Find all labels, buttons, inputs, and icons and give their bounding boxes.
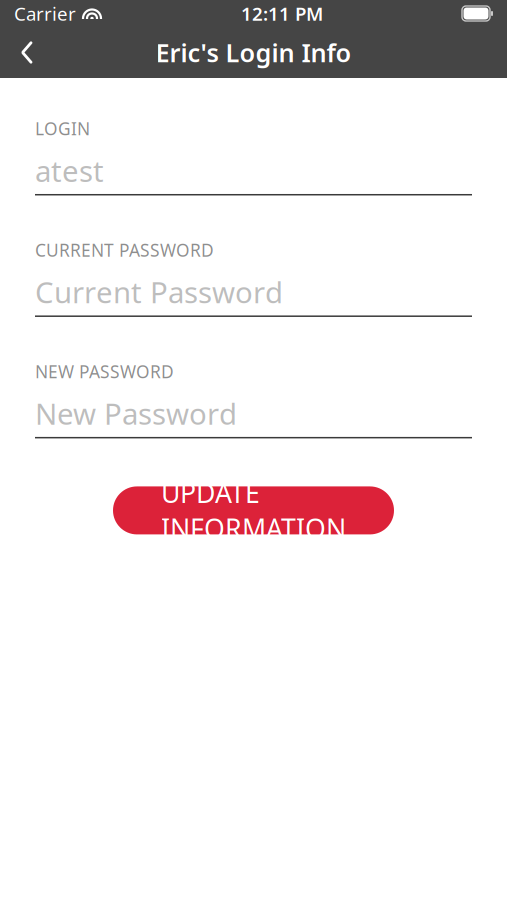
staticText: New Password: [35, 394, 237, 433]
staticText: CURRENT PASSWORD: [35, 238, 214, 261]
staticText: Carrier: [14, 1, 76, 26]
staticText: NEW PASSWORD: [35, 360, 174, 383]
staticText: Current Password: [35, 272, 283, 311]
staticText: UPDATE INFORMATION: [161, 475, 346, 546]
button[interactable]: UPDATE INFORMATION: [113, 486, 394, 534]
staticText: Eric's Login Info: [155, 36, 351, 69]
staticText: LOGIN: [35, 117, 90, 140]
button[interactable]: Back: [0, 27, 54, 78]
staticText: 12:11 PM: [241, 1, 323, 26]
staticText: atest: [35, 151, 104, 190]
